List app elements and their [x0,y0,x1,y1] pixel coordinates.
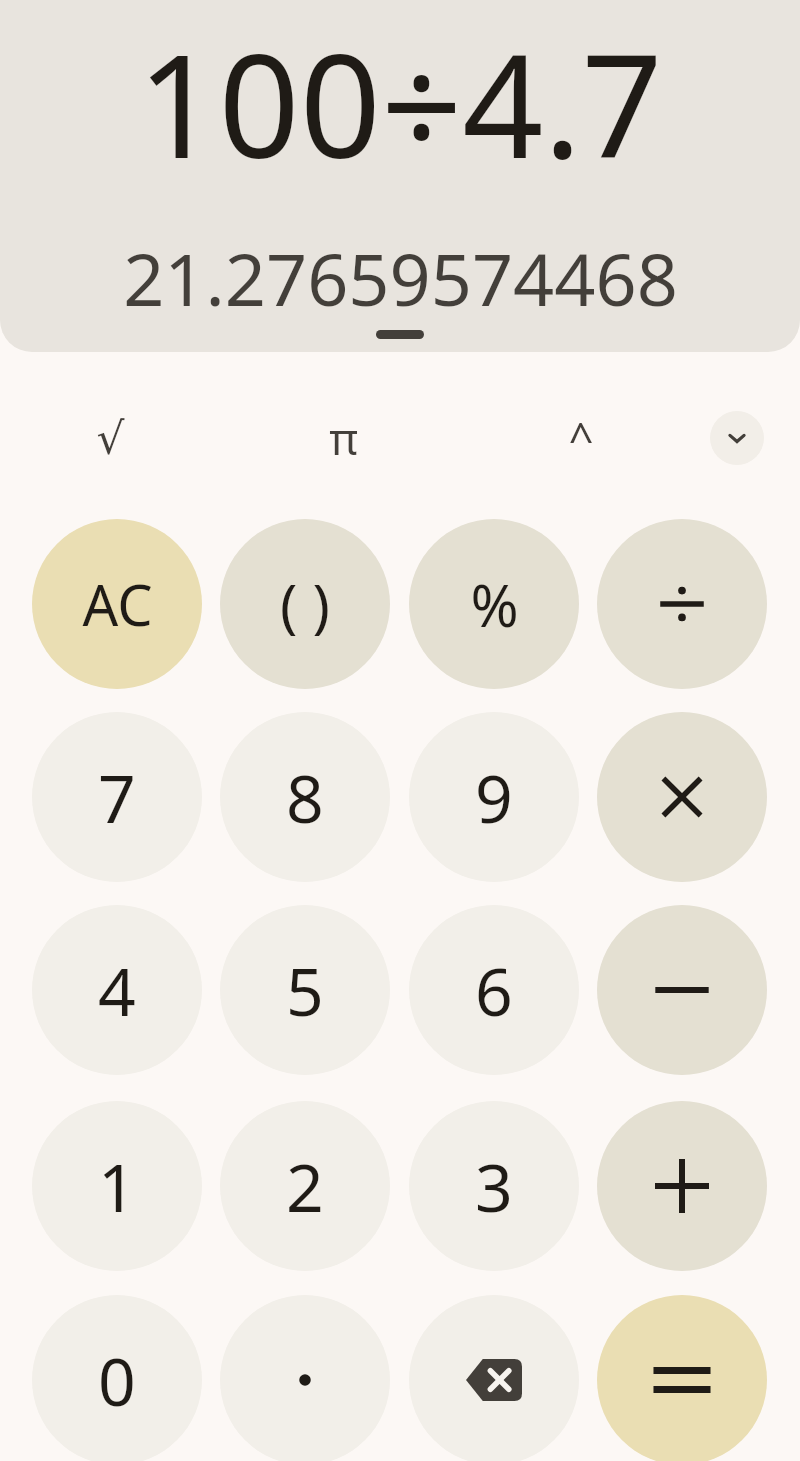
staticText: 4 [98,945,136,1035]
button[interactable]: ^ [547,404,615,472]
button[interactable]: Divide [597,519,767,689]
button[interactable]: 7 [32,712,202,882]
button[interactable]: Decimal point [220,1295,390,1461]
button[interactable]: Subtract [597,905,767,1075]
button[interactable]: 9 [409,712,579,882]
staticText: 100÷4.7 [137,6,663,199]
button[interactable]: 5 [220,905,390,1075]
staticText: 21.27659574468 [123,229,678,327]
button[interactable]: π [309,404,377,472]
staticText: 6 [475,945,513,1035]
button[interactable]: Expand functions [710,411,764,465]
staticText: % [470,565,519,644]
button[interactable]: √ [76,404,144,472]
button[interactable]: Backspace [409,1295,579,1461]
staticText: π [329,408,358,468]
staticText: AC [82,566,153,642]
staticText: √ [96,413,125,464]
button[interactable]: Multiply [597,712,767,882]
button[interactable]: 1 [32,1101,202,1271]
button[interactable]: 3 [409,1101,579,1271]
button[interactable]: 6 [409,905,579,1075]
staticText: ^ [568,408,594,468]
button[interactable]: ( ) [220,519,390,689]
button[interactable]: AC [32,519,202,689]
button[interactable]: 0 [32,1295,202,1461]
button[interactable]: 2 [220,1101,390,1271]
staticText: 1 [98,1141,136,1231]
staticText: 3 [475,1141,513,1231]
button[interactable]: Add [597,1101,767,1271]
button[interactable]: 4 [32,905,202,1075]
button[interactable]: 8 [220,712,390,882]
button[interactable]: % [409,519,579,689]
staticText: 9 [475,752,513,842]
staticText: 8 [286,752,324,842]
button[interactable] [376,330,424,339]
staticText: 5 [286,945,324,1035]
staticText: ( ) [280,565,330,644]
staticText: 0 [98,1335,136,1425]
button[interactable]: Equals [597,1295,767,1461]
staticText: 7 [98,752,136,842]
staticText: 2 [286,1141,324,1231]
